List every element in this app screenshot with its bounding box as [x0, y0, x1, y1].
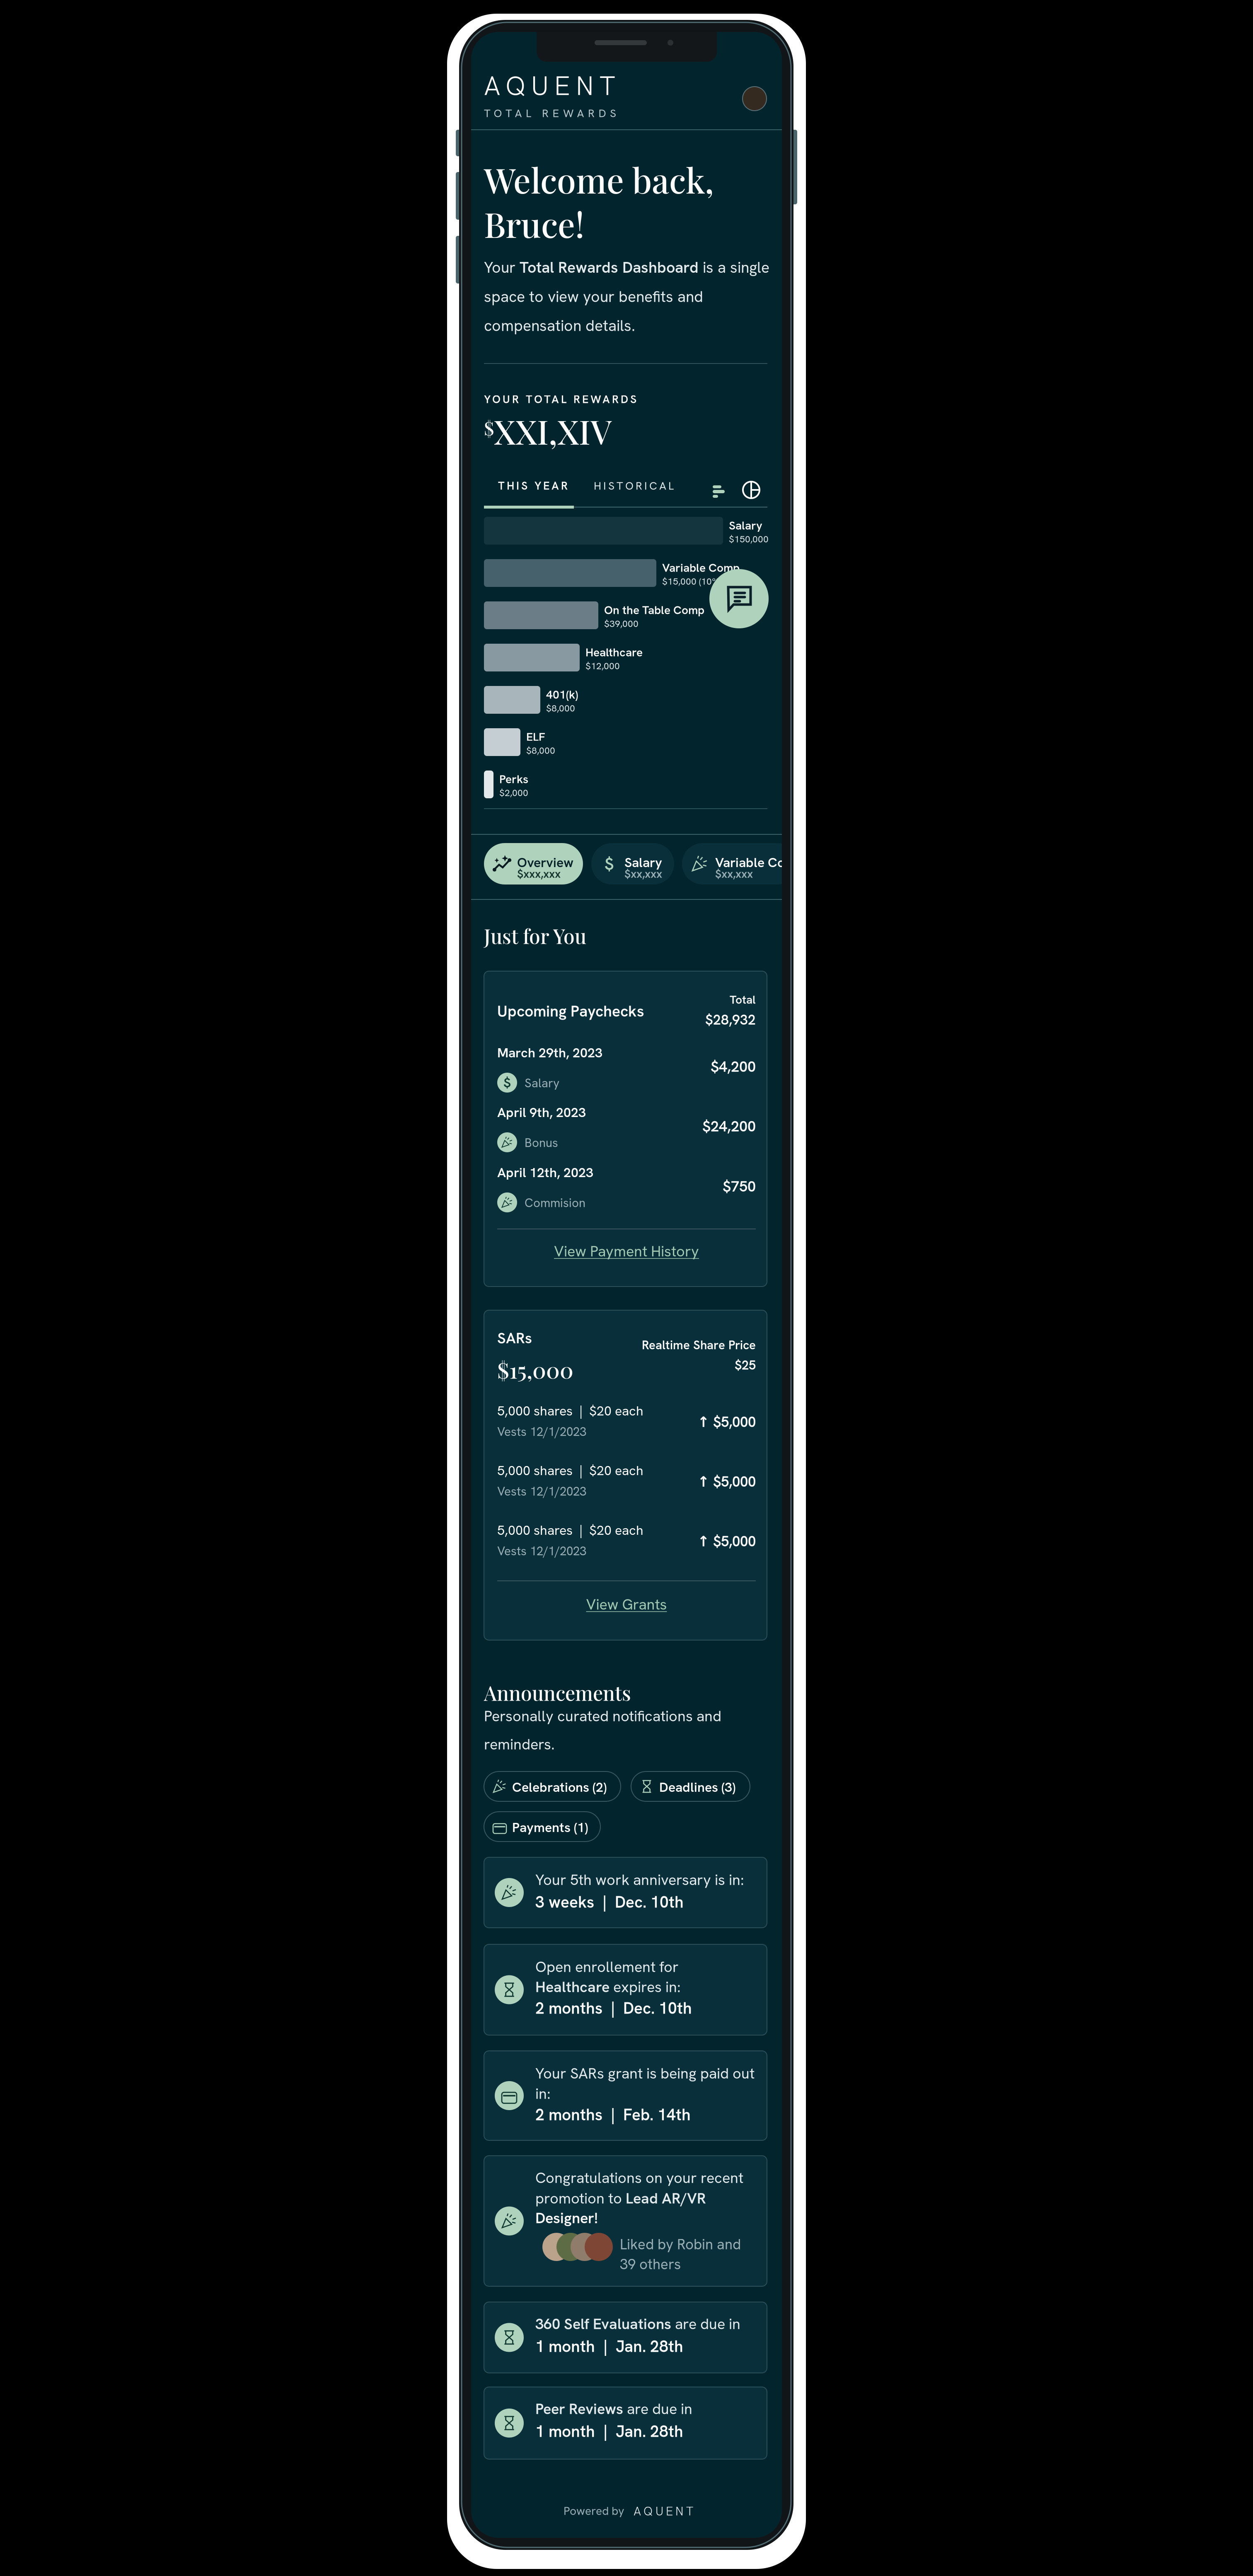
staticText: April 9th, 2023 [497, 1104, 586, 1121]
staticText: Upcoming Paychecks [497, 1001, 644, 1021]
staticText: YOUR TOTAL REWARDS [484, 392, 636, 406]
button[interactable]: Your 5th work anniversary is in: [484, 1857, 767, 1928]
staticText: $39,000 [604, 617, 639, 630]
staticText: Just for You [484, 922, 586, 949]
button[interactable]: T H I S Y E A R [498, 474, 606, 497]
staticText: $15,000 (10%) [662, 575, 721, 587]
staticText: 5,000 shares | $20 each [497, 1402, 643, 1420]
staticText: Vests 12/1/2023 [497, 1483, 586, 1499]
button[interactable]: View Grants [497, 1584, 756, 1625]
staticText: Personally curated notifications and [484, 1706, 721, 1726]
staticText: 39 others [620, 2255, 681, 2274]
button[interactable]: Variable Comp [682, 843, 798, 885]
staticText: space to view your benefits and [484, 287, 703, 307]
staticText: Your SARs grant is being paid out [535, 2064, 755, 2083]
staticText: Realtime Share Price [642, 1337, 756, 1353]
staticText: T H I S Y E A R [498, 479, 568, 493]
staticText: View Grants [586, 1595, 667, 1614]
staticText: Perks [499, 772, 528, 787]
staticText: Announcements [484, 1679, 631, 1706]
staticText: $ [503, 1074, 511, 1091]
staticText: 401(k) [546, 687, 578, 702]
staticText: Powered by [564, 2503, 624, 2518]
button[interactable]: Chat [709, 569, 769, 628]
button[interactable]: View Payment History [497, 1230, 756, 1272]
staticText: 2 months | Dec. 10th [535, 1998, 692, 2019]
staticText: $xx,xxx [715, 867, 753, 881]
staticText: Your 5th work anniversary is in: [535, 1870, 744, 1889]
staticText: Liked by Robin and [620, 2235, 741, 2254]
staticText: ELF [526, 729, 545, 744]
button[interactable]: 360 Self Evaluations are due in [484, 2302, 767, 2373]
button[interactable]: H I S T O R I C A L [594, 474, 718, 497]
button[interactable]: $ [591, 843, 674, 885]
staticText: Open enrollement for [535, 1957, 679, 1976]
staticText: $8,000 [526, 744, 555, 757]
staticText: On the Table Comp [604, 602, 704, 618]
staticText: Celebrations (2) [512, 1779, 607, 1796]
staticText: Payments (1) [512, 1819, 588, 1836]
staticText: $15,000 [497, 1355, 573, 1384]
staticText: $25 [735, 1357, 756, 1373]
staticText: March 29th, 2023 [497, 1044, 602, 1061]
staticText: Deadlines (3) [659, 1779, 735, 1796]
staticText: Designer! [535, 2208, 598, 2228]
staticText: 360 Self Evaluations are due in [535, 2314, 740, 2333]
staticText: Variable Comp [715, 854, 804, 871]
staticText: Commision [525, 1195, 585, 1211]
staticText: Overview [517, 854, 573, 871]
staticText: 2 months | Feb. 14th [535, 2104, 691, 2125]
staticText: $2,000 [499, 787, 528, 799]
staticText: $750 [723, 1177, 756, 1196]
staticText: $12,000 [585, 660, 620, 672]
button[interactable]: Overview [484, 843, 583, 885]
button[interactable]: Payments (1) [484, 1812, 600, 1842]
button[interactable]: Pie chart [743, 482, 760, 498]
staticText: $xx,xxx [624, 867, 662, 881]
staticText: $28,932 [705, 1011, 756, 1029]
staticText: 1 month | Jan. 28th [535, 2421, 683, 2442]
button[interactable]: Celebrations (2) [484, 1771, 621, 1801]
staticText: Salary [729, 518, 762, 533]
button[interactable]: Bar chart [713, 485, 725, 499]
staticText: Variable Comp [662, 560, 740, 575]
staticText: Vests 12/1/2023 [497, 1543, 586, 1559]
staticText: promotion to Lead AR/VR [535, 2189, 706, 2208]
staticText: ↑ $5,000 [697, 1472, 756, 1491]
staticText: A Q U E N T [634, 2503, 693, 2519]
button[interactable]: Peer Reviews are due in [484, 2387, 767, 2459]
staticText: 3 weeks | Dec. 10th [535, 1892, 684, 1912]
staticText: compensation details. [484, 316, 635, 336]
staticText: April 12th, 2023 [497, 1164, 593, 1181]
staticText: Your Total Rewards Dashboard is a single [484, 258, 769, 277]
staticText: $4,200 [711, 1057, 756, 1076]
staticText: Welcome back, [484, 156, 714, 202]
staticText: $8,000 [546, 702, 575, 714]
button[interactable]: Your SARs grant is being paid out [484, 2051, 767, 2140]
staticText: Congratulations on your recent [535, 2168, 743, 2187]
button[interactable]: Open enrollement for [484, 1944, 767, 2035]
staticText: AQUENT [484, 68, 615, 103]
button[interactable]: Deadlines (3) [631, 1771, 750, 1801]
staticText: 5,000 shares | $20 each [497, 1522, 643, 1539]
staticText: 5,000 shares | $20 each [497, 1462, 643, 1479]
staticText: Total [730, 992, 756, 1007]
staticText: Salary [624, 854, 662, 871]
staticText: Salary [525, 1075, 559, 1091]
staticText: Vests 12/1/2023 [497, 1424, 586, 1440]
staticText: H I S T O R I C A L [594, 479, 674, 493]
staticText: Peer Reviews are due in [535, 2399, 692, 2418]
staticText: 1 month | Jan. 28th [535, 2336, 683, 2357]
staticText: reminders. [484, 1734, 555, 1754]
staticText: View Payment History [554, 1241, 699, 1261]
button[interactable]: Congratulations on your recent [484, 2156, 767, 2286]
staticText: Healthcare [585, 645, 643, 660]
staticText: $xxx,xxx [517, 867, 561, 881]
staticText: in: [535, 2084, 551, 2103]
staticText: $24,200 [702, 1116, 756, 1136]
staticText: ↑ $5,000 [697, 1413, 756, 1431]
button[interactable]: Profile [743, 87, 767, 111]
staticText: $150,000 [729, 533, 769, 545]
staticText: Bruce! [484, 201, 584, 246]
staticText: Bonus [525, 1135, 558, 1151]
